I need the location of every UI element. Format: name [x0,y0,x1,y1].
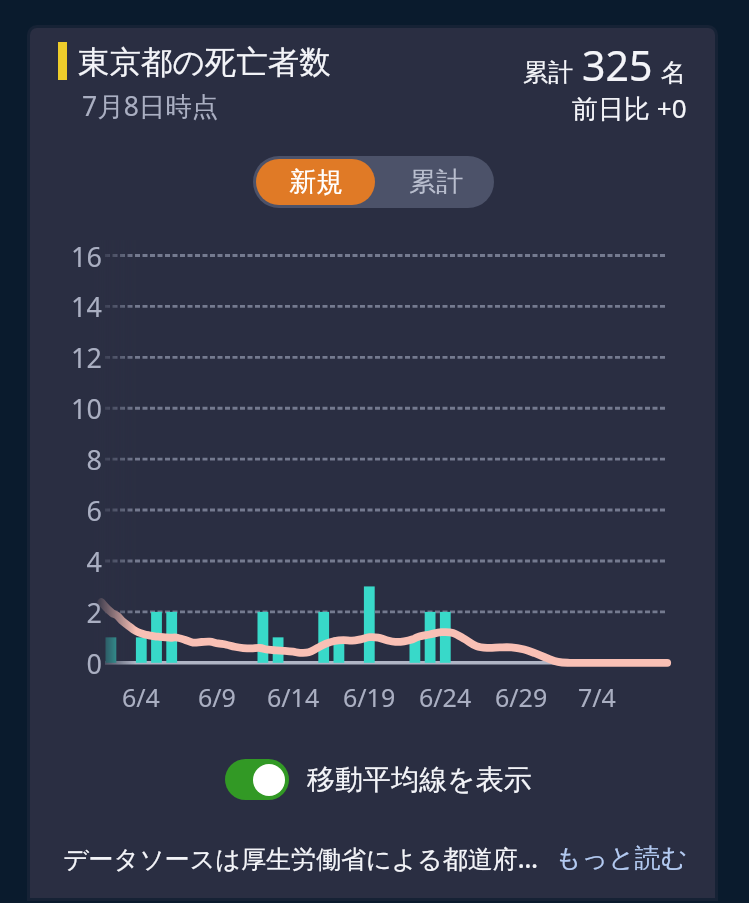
staticText: 新規 [289,165,343,199]
staticText: 14 [71,288,102,325]
staticText: 移動平均線を表示 [307,762,532,797]
staticText: 6/24 [419,680,472,714]
button[interactable]: もっと読む [555,842,688,875]
staticText: 7/4 [578,680,616,714]
staticText: 6/4 [122,680,160,714]
staticText: 8 [86,441,102,478]
staticText: 前日比 +0 [572,90,687,126]
staticText: データソースは厚生労働省による都道府… [63,841,538,875]
staticText: 6/14 [267,680,320,714]
staticText: 12 [71,339,102,376]
button[interactable]: 累計 [378,156,494,208]
staticText: 2 [86,594,102,631]
staticText: 東京都の死亡者数 [78,43,331,83]
staticText: 325 [582,37,653,93]
button[interactable]: 新規 [256,159,375,205]
staticText: 10 [71,390,102,427]
staticText: 6/29 [495,680,548,714]
button[interactable]: Show moving average line [225,759,532,800]
staticText: 4 [86,543,102,580]
staticText: 累計 [409,165,463,199]
staticText: 6/19 [343,680,396,714]
staticText: 16 [71,238,102,275]
staticText: 7月8日時点 [82,88,219,124]
staticText: 累計 [523,57,573,88]
other: Show moving average line [225,759,289,800]
staticText: 6 [86,492,102,529]
staticText: 名 [661,57,686,88]
staticText: 6/9 [198,680,236,714]
staticText: 0 [86,645,102,682]
